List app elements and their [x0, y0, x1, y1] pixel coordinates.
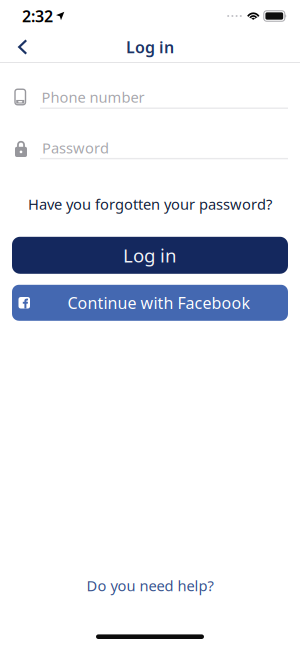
- staticText: Log in: [126, 36, 174, 58]
- button[interactable]: Continue with Facebook: [0, 285, 300, 321]
- button[interactable]: Back: [0, 32, 28, 61]
- button[interactable]: Phone number: [0, 88, 300, 109]
- button[interactable]: Have you forgotten your password?: [28, 194, 272, 214]
- staticText: 2:32: [22, 5, 53, 27]
- button[interactable]: Do you need help?: [86, 576, 213, 595]
- button[interactable]: Password: [0, 140, 300, 159]
- staticText: Continue with Facebook: [67, 292, 250, 313]
- staticText: Have you forgotten your password?: [28, 194, 272, 214]
- staticText: Log in: [123, 243, 177, 268]
- button[interactable]: Log in: [0, 237, 300, 274]
- staticText: Phone number: [41, 87, 144, 107]
- staticText: Password: [42, 138, 109, 158]
- staticText: Do you need help?: [86, 576, 213, 595]
